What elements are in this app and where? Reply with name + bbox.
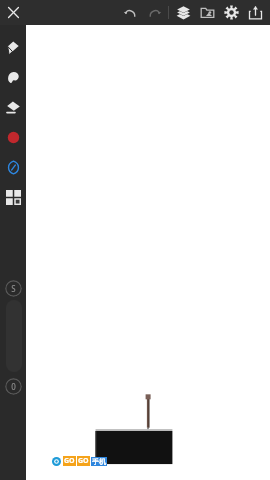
button[interactable]: Import image: [195, 0, 219, 25]
button[interactable]: Brush: [0, 156, 26, 178]
staticText: 0: [11, 381, 16, 392]
button[interactable]: Color: [0, 126, 26, 148]
button[interactable]: Layers: [171, 0, 195, 25]
button[interactable]: Share: [243, 0, 267, 25]
button[interactable]: Undo: [118, 0, 142, 25]
button[interactable]: Grid: [0, 186, 26, 208]
button[interactable]: Close: [0, 0, 26, 25]
button[interactable]: Redo: [142, 0, 166, 25]
button[interactable]: Size: [5, 280, 22, 297]
button[interactable]: Opacity: [5, 378, 22, 395]
button[interactable]: Eraser tool: [0, 96, 26, 118]
button[interactable]: Marker tool: [0, 36, 26, 58]
button[interactable]: Smudge tool: [0, 66, 26, 88]
staticText: S: [11, 283, 16, 294]
button[interactable]: Settings: [219, 0, 243, 25]
staticText: 手机: [92, 457, 106, 466]
staticText: GO: [78, 456, 89, 466]
staticText: GO: [64, 456, 75, 466]
